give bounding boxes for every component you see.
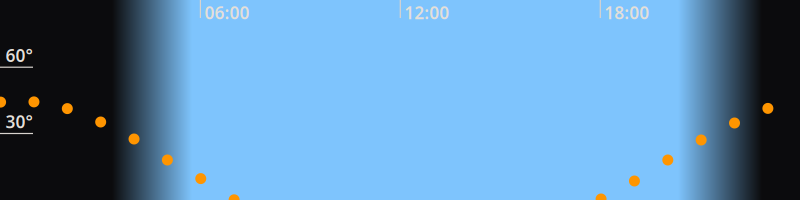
staticText: 12:00 bbox=[404, 1, 449, 24]
staticText: 06:00 bbox=[204, 1, 249, 24]
staticText: 60° bbox=[5, 44, 32, 67]
staticText: 18:00 bbox=[604, 1, 649, 24]
staticText: 30° bbox=[5, 110, 32, 133]
